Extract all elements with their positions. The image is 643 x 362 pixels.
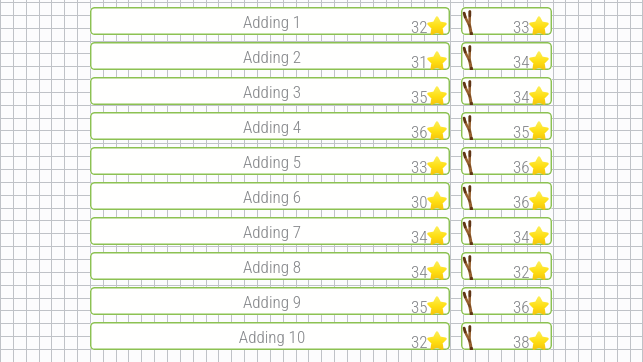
other: Sticks practice <box>463 184 477 210</box>
button[interactable]: Adding 10 <box>90 322 450 350</box>
staticText: 34 <box>411 227 428 245</box>
button[interactable]: Adding 9 <box>90 287 450 315</box>
staticText: Adding 4 <box>92 117 450 137</box>
staticText: Adding 3 <box>92 82 450 102</box>
staticText: 33 <box>411 157 428 175</box>
other: Sticks practice <box>463 149 477 175</box>
button[interactable]: Adding 7 <box>90 217 450 245</box>
staticText: 32 <box>513 262 530 280</box>
staticText: 36 <box>513 297 530 315</box>
button[interactable]: Adding 5 <box>90 147 450 175</box>
staticText: 34 <box>513 52 530 70</box>
staticText: Adding 10 <box>92 327 450 347</box>
other: Sticks practice <box>463 324 477 350</box>
staticText: Adding 8 <box>92 257 450 277</box>
button[interactable]: Sticks practice <box>461 182 552 210</box>
staticText: 32 <box>411 332 428 350</box>
staticText: 32 <box>411 17 428 35</box>
staticText: 35 <box>513 122 530 140</box>
button[interactable]: Sticks practice <box>461 217 552 245</box>
staticText: 34 <box>513 87 530 105</box>
button[interactable]: Sticks practice <box>461 147 552 175</box>
staticText: Adding 9 <box>92 292 450 312</box>
button[interactable]: Adding 6 <box>90 182 450 210</box>
staticText: 35 <box>411 297 428 315</box>
staticText: Adding 1 <box>92 12 450 32</box>
button[interactable]: Adding 4 <box>90 112 450 140</box>
staticText: Adding 2 <box>92 47 450 67</box>
button[interactable]: Sticks practice <box>461 252 552 280</box>
staticText: 30 <box>411 192 428 210</box>
other: Sticks practice <box>463 219 477 245</box>
other: Sticks practice <box>463 9 477 35</box>
other: Sticks practice <box>463 114 477 140</box>
button[interactable]: Sticks practice <box>461 287 552 315</box>
staticText: Adding 6 <box>92 187 450 207</box>
button[interactable]: Adding 3 <box>90 77 450 105</box>
staticText: Adding 5 <box>92 152 450 172</box>
staticText: 36 <box>513 192 530 210</box>
staticText: 36 <box>513 157 530 175</box>
staticText: Adding 7 <box>92 222 450 242</box>
staticText: 31 <box>411 52 428 70</box>
staticText: 33 <box>513 17 530 35</box>
button[interactable]: Adding 1 <box>90 7 450 35</box>
other: Sticks practice <box>463 289 477 315</box>
button[interactable]: Adding 8 <box>90 252 450 280</box>
other: Sticks practice <box>463 79 477 105</box>
button[interactable]: Adding 2 <box>90 42 450 70</box>
button[interactable]: Sticks practice <box>461 77 552 105</box>
staticText: 38 <box>513 332 530 350</box>
other: Sticks practice <box>463 44 477 70</box>
button[interactable]: Sticks practice <box>461 112 552 140</box>
button[interactable]: Sticks practice <box>461 322 552 350</box>
button[interactable]: Sticks practice <box>461 7 552 35</box>
staticText: 35 <box>411 87 428 105</box>
staticText: 36 <box>411 122 428 140</box>
other: Sticks practice <box>463 254 477 280</box>
staticText: 34 <box>411 262 428 280</box>
button[interactable]: Sticks practice <box>461 42 552 70</box>
staticText: 34 <box>513 227 530 245</box>
